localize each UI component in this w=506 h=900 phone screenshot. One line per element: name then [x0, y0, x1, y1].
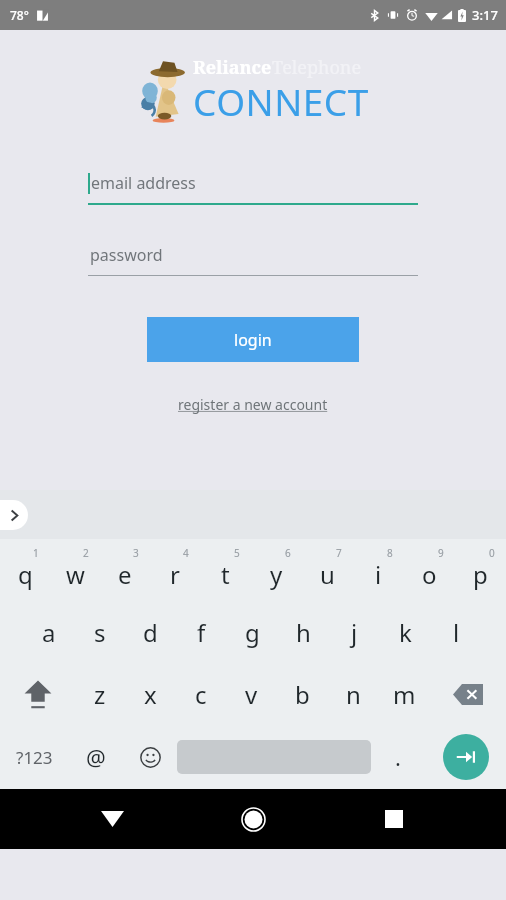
staticText: s — [94, 616, 106, 649]
staticText: h — [296, 616, 311, 649]
staticText: 1 — [33, 546, 39, 560]
staticText: Telephone — [272, 55, 362, 80]
button[interactable]: g — [227, 601, 278, 663]
button[interactable]: . — [371, 725, 425, 789]
button[interactable]: e — [100, 539, 150, 601]
staticText: v — [245, 678, 258, 711]
staticText: 2 — [83, 546, 89, 560]
button[interactable]: f — [176, 601, 227, 663]
staticText: m — [393, 678, 416, 711]
staticText: e — [118, 558, 132, 591]
button[interactable]: t — [200, 539, 251, 601]
staticText: 78° — [10, 7, 29, 23]
button[interactable]: v — [226, 663, 277, 725]
button[interactable]: s — [74, 601, 125, 663]
staticText: z — [94, 678, 106, 711]
staticText: 5 — [234, 546, 240, 560]
staticText: w — [66, 558, 85, 591]
staticText: a — [42, 616, 56, 649]
button[interactable]: Space — [177, 725, 371, 789]
button[interactable]: Emoji — [123, 725, 177, 789]
button[interactable]: w — [50, 539, 100, 601]
staticText: y — [270, 558, 283, 591]
button[interactable]: l — [431, 601, 482, 663]
button[interactable]: m — [379, 663, 430, 725]
staticText: password — [90, 244, 163, 266]
button[interactable]: n — [328, 663, 379, 725]
staticText: ?123 — [16, 746, 53, 769]
button[interactable]: Expand suggestions — [0, 500, 28, 530]
button[interactable]: Home — [224, 790, 282, 848]
button[interactable]: a — [24, 601, 74, 663]
staticText: 0 — [489, 546, 495, 560]
button[interactable]: x — [125, 663, 175, 725]
button[interactable]: j — [329, 601, 380, 663]
button[interactable]: u — [302, 539, 353, 601]
staticText: 6 — [285, 546, 291, 560]
button[interactable]: Shift — [0, 663, 75, 725]
staticText: Reliance — [193, 55, 272, 80]
button[interactable]: Recents — [365, 790, 423, 848]
staticText: 7 — [336, 546, 342, 560]
staticText: 9 — [438, 546, 444, 560]
staticText: t — [221, 558, 230, 591]
staticText: email address — [91, 172, 196, 194]
staticText: 3:17 — [472, 6, 498, 24]
staticText: @ — [86, 742, 106, 772]
staticText: g — [245, 616, 260, 649]
button[interactable]: k — [380, 601, 431, 663]
staticText: q — [18, 558, 33, 591]
button[interactable]: y — [251, 539, 302, 601]
staticText: 8 — [387, 546, 393, 560]
button[interactable]: r — [150, 539, 200, 601]
staticText: x — [144, 678, 157, 711]
staticText: 3 — [133, 546, 139, 560]
button[interactable]: Backspace — [430, 663, 506, 725]
button[interactable]: ?123 — [0, 725, 69, 789]
button[interactable]: p — [455, 539, 506, 601]
staticText: o — [422, 558, 437, 591]
staticText: . — [395, 742, 401, 772]
button[interactable]: o — [404, 539, 455, 601]
staticText: login — [234, 329, 272, 351]
button[interactable]: c — [175, 663, 226, 725]
staticText: d — [143, 616, 158, 649]
button[interactable]: q — [0, 539, 50, 601]
staticText: i — [375, 558, 382, 591]
staticText: n — [346, 678, 361, 711]
staticText: b — [295, 678, 310, 711]
staticText: CONNECT — [193, 76, 369, 126]
button[interactable]: Back — [83, 790, 141, 848]
staticText: r — [170, 558, 180, 591]
button[interactable]: z — [75, 663, 125, 725]
button[interactable]: @ — [69, 725, 123, 789]
button[interactable]: i — [353, 539, 404, 601]
staticText: c — [195, 678, 207, 711]
button[interactable]: h — [278, 601, 329, 663]
button[interactable]: b — [277, 663, 328, 725]
button[interactable]: login — [147, 317, 359, 362]
staticText: 4 — [183, 546, 189, 560]
staticText: k — [399, 616, 412, 649]
staticText: l — [453, 616, 460, 649]
staticText: u — [320, 558, 335, 591]
staticText: register a new account — [178, 395, 328, 414]
button[interactable]: d — [125, 601, 176, 663]
staticText: j — [351, 616, 358, 649]
button[interactable]: Next — [443, 734, 489, 780]
staticText: p — [473, 558, 488, 591]
button[interactable]: register a new account — [172, 392, 334, 417]
staticText: f — [197, 616, 206, 649]
